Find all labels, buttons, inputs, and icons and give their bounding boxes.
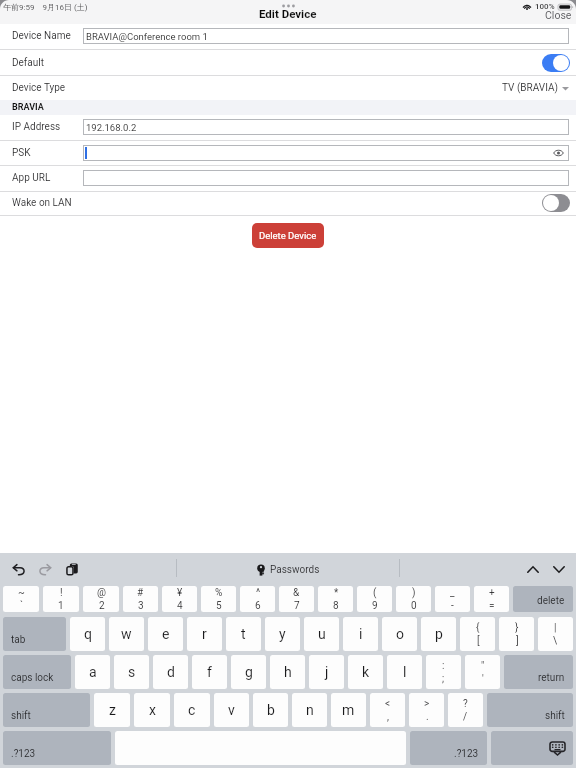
button[interactable]: Show password (83, 145, 569, 161)
button[interactable]: Device Type (0, 76, 576, 100)
button[interactable]: > (409, 693, 444, 727)
button[interactable] (83, 170, 569, 186)
staticText: 午前9:59 9月16日 (土) (3, 2, 88, 12)
button[interactable]: o (382, 617, 417, 651)
button[interactable]: < (370, 693, 405, 727)
staticText: App URL (12, 172, 51, 184)
button[interactable]: .?123 (3, 731, 111, 765)
staticText: z (109, 702, 116, 718)
button[interactable]: c (174, 693, 210, 727)
button[interactable]: d (153, 655, 188, 689)
staticText: [ (477, 635, 480, 647)
button[interactable]: ! (43, 586, 79, 612)
staticText: w (121, 626, 132, 642)
button[interactable]: i (343, 617, 378, 651)
button[interactable]: ( (357, 586, 392, 612)
button[interactable]: Show password (553, 149, 569, 157)
button[interactable]: f (192, 655, 227, 689)
staticText: 1 (58, 600, 64, 612)
staticText: * (334, 587, 339, 599)
button[interactable]: x (134, 693, 170, 727)
staticText: TV (BRAVIA) (502, 82, 558, 94)
button[interactable]: q (70, 617, 105, 651)
button[interactable]: z (94, 693, 130, 727)
button[interactable]: Previous field (524, 560, 542, 579)
staticText: s (128, 664, 136, 680)
staticText: v (228, 702, 235, 718)
staticText: ^ (256, 587, 261, 599)
button[interactable]: Close (545, 9, 576, 21)
staticText: caps lock (11, 672, 54, 684)
button[interactable]: % (201, 586, 236, 612)
button[interactable]: n (292, 693, 327, 727)
button[interactable] (542, 194, 570, 212)
button[interactable]: return (504, 655, 573, 689)
button[interactable]: g (231, 655, 266, 689)
button[interactable]: Redo (35, 558, 56, 581)
button[interactable]: b (253, 693, 288, 727)
staticText: . (426, 711, 429, 723)
button[interactable]: caps lock (3, 655, 71, 689)
staticText: Device Type (12, 82, 66, 94)
button[interactable]: t (226, 617, 261, 651)
button[interactable]: l (387, 655, 422, 689)
button[interactable]: { (460, 617, 495, 651)
button[interactable]: @ (83, 586, 119, 612)
button[interactable]: shift (487, 693, 573, 727)
button[interactable]: } (499, 617, 534, 651)
button[interactable]: tab (3, 617, 66, 651)
button[interactable]: Undo (8, 558, 29, 581)
staticText: e (162, 626, 170, 642)
staticText: ` (20, 600, 24, 612)
button[interactable]: e (148, 617, 183, 651)
staticText: k (362, 664, 370, 680)
button[interactable]: " (465, 655, 500, 689)
button[interactable]: ) (396, 586, 431, 612)
button[interactable]: v (214, 693, 249, 727)
button[interactable]: r (187, 617, 222, 651)
staticText: j (325, 664, 329, 680)
button[interactable]: s (114, 655, 149, 689)
button[interactable] (542, 54, 570, 72)
button[interactable]: Delete Device (252, 223, 324, 248)
button[interactable]: p (421, 617, 456, 651)
button[interactable]: Next field (550, 560, 568, 579)
button[interactable]: Passwords (253, 560, 324, 580)
button[interactable]: k (348, 655, 383, 689)
button[interactable]: m (331, 693, 366, 727)
button[interactable]: & (279, 586, 314, 612)
button[interactable]: ~ (3, 586, 39, 612)
staticText: .?123 (454, 748, 479, 760)
staticText: ! (60, 587, 63, 599)
button[interactable]: _ (435, 586, 470, 612)
button[interactable]: + (474, 586, 509, 612)
button[interactable]: : (426, 655, 461, 689)
button[interactable]: Hide keyboard (491, 731, 573, 765)
button[interactable]: j (309, 655, 344, 689)
button[interactable]: h (270, 655, 305, 689)
button[interactable]: u (304, 617, 339, 651)
button[interactable]: ? (448, 693, 483, 727)
button[interactable]: # (123, 586, 158, 612)
staticText: ; (442, 673, 445, 685)
button[interactable]: delete (513, 586, 573, 612)
staticText: Wake on LAN (12, 197, 72, 209)
button[interactable]: Paste (62, 558, 82, 581)
staticText: h (284, 664, 292, 680)
button[interactable]: 192.168.0.2 (83, 119, 569, 135)
button[interactable]: * (318, 586, 353, 612)
button[interactable]: y (265, 617, 300, 651)
button[interactable]: shift (3, 693, 90, 727)
button[interactable]: ¥ (162, 586, 197, 612)
button[interactable]: ^ (240, 586, 275, 612)
button[interactable]: a (75, 655, 110, 689)
staticText: 0 (411, 600, 417, 612)
staticText: t (241, 626, 246, 642)
button[interactable]: | (538, 617, 573, 651)
button[interactable]: .?123 (410, 731, 487, 765)
staticText: ) (412, 587, 416, 599)
staticText: Device Name (12, 30, 71, 42)
button[interactable]: w (109, 617, 144, 651)
button[interactable]: BRAVIA@Conference room 1 (83, 28, 569, 44)
